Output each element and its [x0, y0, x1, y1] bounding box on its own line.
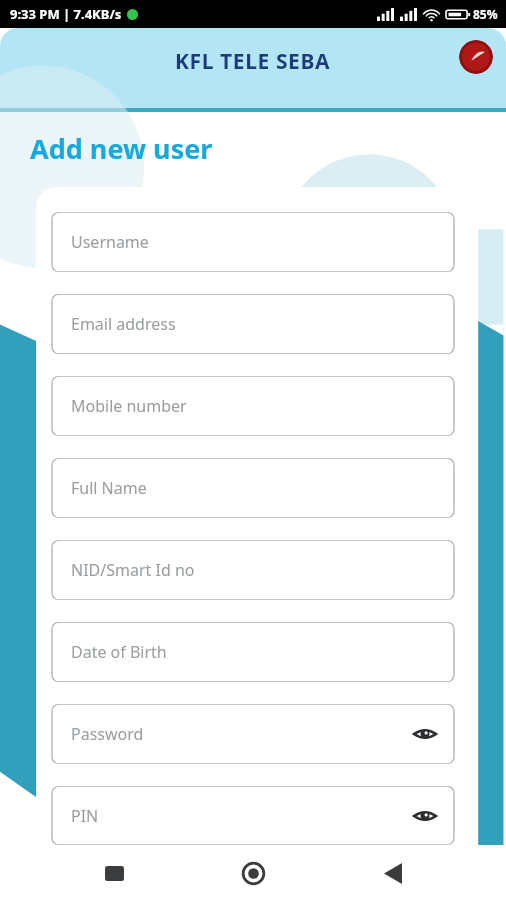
staticText: PIN [71, 805, 99, 827]
button[interactable]: Password [51, 704, 455, 764]
staticText: Add new user [30, 130, 213, 167]
button[interactable]: Username [51, 212, 455, 272]
button[interactable]: Show Password [410, 719, 440, 749]
button[interactable]: Full Name [51, 458, 455, 518]
staticText: Username [71, 231, 149, 253]
button[interactable]: Mobile number [51, 376, 455, 436]
button[interactable]: Date of Birth [51, 622, 455, 682]
button[interactable]: Home [227, 847, 279, 899]
staticText: Mobile number [71, 395, 187, 417]
button[interactable]: Back [367, 847, 419, 899]
staticText: Password [71, 723, 144, 745]
button[interactable]: PIN [51, 786, 455, 845]
button[interactable]: Email address [51, 294, 455, 354]
staticText: Email address [71, 313, 176, 335]
staticText: KFL TELE SEBA [175, 47, 331, 76]
staticText: Full Name [71, 477, 147, 499]
staticText: 85% [473, 6, 498, 22]
button[interactable]: Show PIN [410, 801, 440, 831]
button[interactable]: Profile [459, 40, 493, 74]
staticText: Date of Birth [71, 641, 167, 663]
button[interactable]: Recents [88, 847, 140, 899]
staticText: 9:33 PM | 7.4KB/s [10, 5, 122, 23]
staticText: NID/Smart Id no [71, 559, 195, 581]
button[interactable]: NID/Smart Id no [51, 540, 455, 600]
